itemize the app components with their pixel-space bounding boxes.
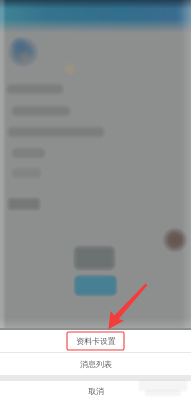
- button[interactable]: 取消: [0, 381, 191, 400]
- button[interactable]: 消息列表: [0, 353, 191, 375]
- button[interactable]: 资料卡设置: [0, 330, 191, 352]
- staticText: 资料卡设置: [76, 336, 116, 346]
- staticText: 取消: [88, 386, 104, 396]
- staticText: 消息列表: [80, 359, 112, 369]
